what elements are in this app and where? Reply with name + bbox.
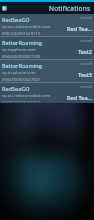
staticText: RedSeaGO [2,85,30,92]
staticText: 8902242891629119 [2,31,41,35]
button[interactable]: RedSeaGO [0,83,94,103]
staticText: 8944700000427601 [2,77,41,81]
button[interactable]: BetterRoaming [0,60,94,82]
staticText: install [80,61,92,67]
staticText: Test2 [78,48,92,55]
staticText: Red Team [67,25,92,32]
button[interactable]: BetterRoaming [0,37,94,59]
staticText: sp.myphone.com [2,47,36,53]
staticText: Test3 [78,71,92,78]
staticText: sp-eu.redseamobile.com [2,93,51,99]
staticText: Notifications [49,4,91,13]
staticText: BetterRoaming [2,62,42,69]
staticText: 8944302000027200 [2,54,41,58]
button[interactable]: RedSeaGO [0,14,94,36]
staticText: install [80,38,92,44]
staticText: 8902242891629119 [2,100,41,102]
staticText: RedSeaGO [2,16,30,23]
staticText: install [80,84,92,90]
staticText: sp-eu.redseamobile.com [2,24,51,30]
staticText: Red Team [67,94,92,101]
button[interactable]: Menu [2,6,7,11]
staticText: sp.truphone.com [2,70,36,76]
staticText: install [80,15,92,21]
staticText: BetterRoaming [2,39,42,46]
